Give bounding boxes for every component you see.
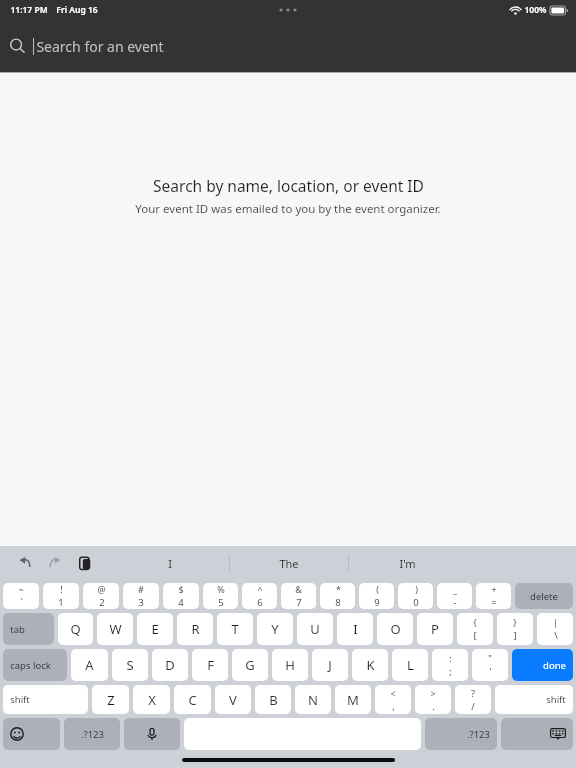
button[interactable]: { — [457, 613, 493, 645]
staticText: 8 — [335, 596, 341, 609]
staticText: . — [432, 700, 435, 713]
button[interactable]: ! — [43, 583, 79, 609]
button[interactable]: delete — [515, 583, 573, 609]
staticText: Q — [70, 620, 81, 638]
button[interactable]: .?123 — [64, 718, 120, 750]
staticText: & — [295, 583, 302, 595]
button[interactable]: : — [432, 649, 468, 681]
other: Search — [8, 37, 26, 55]
staticText: - — [453, 596, 457, 609]
staticText: Z — [107, 691, 115, 709]
button[interactable]: .?123 — [425, 718, 497, 750]
button[interactable]: N — [295, 685, 331, 714]
button[interactable]: P — [417, 613, 453, 645]
button[interactable]: S — [112, 649, 148, 681]
staticText: | — [553, 616, 558, 628]
staticText: ] — [513, 629, 517, 642]
button[interactable]: I'm — [348, 546, 467, 580]
button[interactable]: > — [415, 685, 451, 714]
button[interactable]: K — [352, 649, 388, 681]
button[interactable]: Search — [0, 20, 576, 72]
button[interactable]: F — [192, 649, 228, 681]
button[interactable]: Undo — [14, 552, 36, 574]
button[interactable]: U — [297, 613, 333, 645]
button[interactable]: " — [472, 649, 508, 681]
staticText: 2 — [99, 596, 105, 609]
button[interactable]: * — [320, 583, 355, 609]
button[interactable]: D — [152, 649, 188, 681]
button[interactable]: mic — [124, 718, 180, 750]
button[interactable]: & — [281, 583, 316, 609]
button[interactable]: X — [133, 685, 170, 714]
staticText: N — [308, 691, 318, 709]
button[interactable]: Paste — [74, 552, 96, 574]
button[interactable]: C — [174, 685, 211, 714]
staticText: $ — [178, 583, 184, 595]
staticText: .?123 — [81, 728, 104, 741]
button[interactable]: H — [272, 649, 308, 681]
staticText: # — [138, 583, 144, 595]
button[interactable]: shift — [3, 685, 88, 714]
staticText: Your event ID was emailed to you by the … — [135, 201, 441, 217]
button[interactable]: $ — [163, 583, 199, 609]
button[interactable]: caps lock — [3, 649, 67, 681]
staticText: 11:17 PM — [10, 4, 48, 16]
staticText: } — [513, 616, 517, 628]
staticText: I — [168, 556, 172, 571]
staticText: I'm — [399, 556, 416, 571]
staticText: V — [229, 691, 237, 709]
button[interactable]: A — [71, 649, 108, 681]
button[interactable]: Q — [58, 613, 93, 645]
staticText: S — [126, 656, 134, 674]
button[interactable]: done — [512, 649, 573, 681]
staticText: Y — [271, 620, 279, 638]
button[interactable]: < — [375, 685, 411, 714]
staticText: ` — [20, 596, 23, 609]
button[interactable]: G — [232, 649, 268, 681]
button[interactable]: I — [337, 613, 373, 645]
button[interactable]: I — [110, 546, 229, 580]
staticText: Search for an event — [36, 37, 164, 56]
button[interactable]: B — [255, 685, 291, 714]
button[interactable]: ^ — [242, 583, 277, 609]
staticText: " — [488, 652, 492, 664]
button[interactable]: ? — [455, 685, 491, 714]
staticText: + — [491, 583, 497, 595]
button[interactable]: Redo — [44, 552, 66, 574]
button[interactable]: M — [335, 685, 371, 714]
button[interactable]: _ — [437, 583, 472, 609]
staticText: = — [491, 596, 497, 609]
button[interactable]: Y — [257, 613, 293, 645]
button[interactable]: % — [203, 583, 238, 609]
button[interactable]: T — [217, 613, 253, 645]
button[interactable]: ~ — [3, 583, 39, 609]
button[interactable]: The — [229, 546, 348, 580]
staticText: P — [431, 620, 439, 638]
button[interactable]: } — [497, 613, 533, 645]
button[interactable]: R — [177, 613, 213, 645]
button[interactable]: E — [137, 613, 173, 645]
staticText: L — [407, 656, 414, 674]
button[interactable]: # — [123, 583, 159, 609]
button[interactable]: + — [476, 583, 511, 609]
button[interactable]: | — [537, 613, 573, 645]
staticText: .?123 — [467, 728, 490, 741]
button[interactable]: shift — [495, 685, 573, 714]
button[interactable]: emoji — [3, 718, 60, 750]
staticText: H — [285, 656, 295, 674]
button[interactable]: L — [392, 649, 428, 681]
button[interactable]: @ — [83, 583, 119, 609]
staticText: shift — [10, 693, 30, 706]
button[interactable]: ) — [398, 583, 433, 609]
button[interactable]: V — [215, 685, 251, 714]
button[interactable]: J — [312, 649, 348, 681]
staticText: done — [543, 659, 566, 672]
button[interactable]: ( — [359, 583, 394, 609]
staticText: : — [449, 652, 452, 664]
button[interactable]: W — [97, 613, 133, 645]
button[interactable]: kbd — [501, 718, 573, 750]
button[interactable]: Z — [92, 685, 129, 714]
button[interactable]: O — [377, 613, 413, 645]
button[interactable]: tab — [3, 613, 54, 645]
